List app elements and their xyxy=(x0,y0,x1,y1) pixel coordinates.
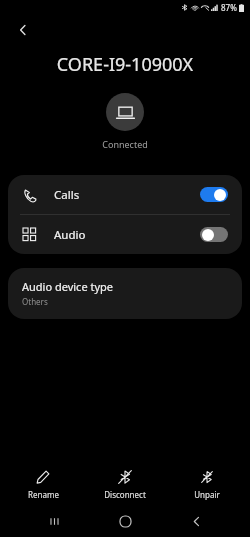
button[interactable]: Calls xyxy=(8,175,242,214)
button[interactable]: Recents xyxy=(37,505,71,537)
button[interactable]: Back xyxy=(179,505,213,537)
button[interactable]: Home xyxy=(108,505,142,537)
other: Computer xyxy=(106,93,144,131)
staticText: Disconnect xyxy=(104,489,146,500)
staticText: Audio xyxy=(54,227,86,243)
staticText: CORE-I9-10900X xyxy=(0,52,250,77)
staticText: Connected xyxy=(0,138,250,150)
staticText: Unpair xyxy=(194,489,220,500)
button[interactable]: Unpair xyxy=(168,466,246,503)
button[interactable]: Disconnect xyxy=(86,466,164,503)
button[interactable]: Rename xyxy=(4,466,82,503)
staticText: Audio device type xyxy=(22,279,114,294)
staticText: Calls xyxy=(54,187,80,203)
button[interactable]: Back xyxy=(8,15,38,45)
staticText: 87% xyxy=(221,2,237,13)
button[interactable]: Audio xyxy=(8,215,242,254)
staticText: Rename xyxy=(28,489,59,500)
button[interactable]: Audio device type xyxy=(8,268,242,319)
staticText: Others xyxy=(22,296,48,307)
